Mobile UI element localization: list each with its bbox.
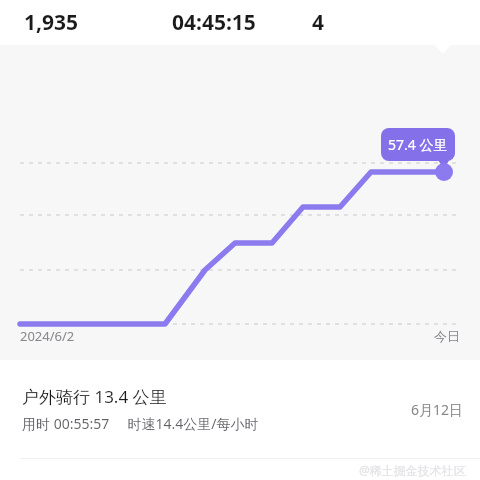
staticText: 2024/6/2	[20, 327, 75, 345]
staticText: 户外骑行 13.4 公里	[22, 385, 167, 408]
staticText: 用时 00:55:57 时速14.4公里/每小时	[22, 414, 259, 433]
button[interactable]: Total distance 57.4 kilometers	[381, 128, 455, 161]
staticText: 4	[312, 8, 325, 37]
staticText: 今日	[434, 328, 460, 344]
button[interactable]: 1,935	[0, 0, 148, 45]
button[interactable]: 04:45:15	[148, 0, 306, 45]
staticText: 6月12日	[411, 400, 464, 419]
button[interactable]: Total distance 57.4 kilometers	[0, 45, 480, 360]
staticText: 1,935	[24, 8, 79, 37]
button[interactable]: 4	[306, 0, 480, 45]
staticText: @稀土掘金技术社区	[359, 462, 466, 478]
staticText: 57.4 公里	[388, 135, 448, 154]
staticText: 04:45:15	[172, 8, 256, 37]
button[interactable]: 户外骑行 13.4 公里	[0, 360, 480, 458]
